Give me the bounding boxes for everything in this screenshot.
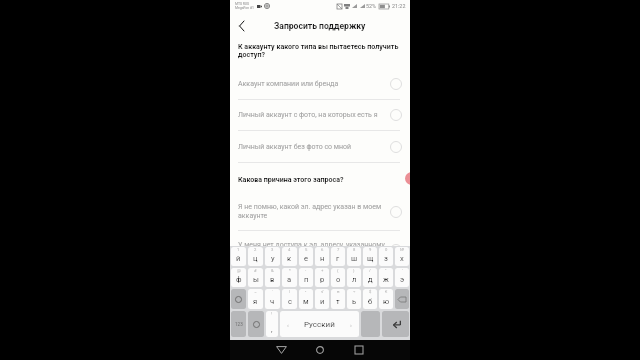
button[interactable]: ~ bbox=[248, 289, 263, 309]
staticText: @ bbox=[237, 268, 241, 273]
button[interactable]: # bbox=[248, 268, 263, 287]
staticText: п bbox=[304, 275, 309, 284]
button[interactable]: € bbox=[379, 289, 393, 309]
button[interactable]: Backspace bbox=[395, 289, 409, 309]
staticText: э bbox=[400, 275, 405, 284]
staticText: √ bbox=[321, 289, 324, 294]
staticText: е bbox=[304, 254, 309, 263]
button[interactable]: & bbox=[265, 268, 280, 287]
button[interactable]: 2 bbox=[248, 247, 263, 266]
button[interactable]: ' bbox=[395, 268, 409, 287]
staticText: х bbox=[400, 254, 404, 263]
staticText: ч bbox=[270, 297, 275, 306]
staticText: | bbox=[289, 289, 291, 294]
button[interactable]: Личный аккаунт без фото со мной bbox=[230, 131, 410, 163]
staticText: € bbox=[385, 289, 388, 294]
button[interactable]: ` bbox=[265, 289, 280, 309]
staticText: Я не помню, какой эл. адрес указан в мое… bbox=[238, 203, 386, 220]
staticText: , bbox=[271, 325, 273, 334]
staticText: 5 bbox=[305, 247, 308, 252]
staticText: 1 bbox=[237, 247, 240, 252]
staticText: ! bbox=[271, 311, 273, 316]
button[interactable]: Home bbox=[309, 340, 331, 360]
staticText: в bbox=[270, 275, 275, 284]
button[interactable]: 8 bbox=[347, 247, 361, 266]
staticText: о bbox=[336, 275, 341, 284]
staticText: $ bbox=[369, 289, 372, 294]
button[interactable]: Я не помню, какой эл. адрес указан в мое… bbox=[230, 193, 410, 231]
button[interactable]: Enter bbox=[382, 311, 409, 337]
button[interactable]: ) bbox=[347, 268, 361, 287]
staticText: г bbox=[336, 254, 340, 263]
staticText: з bbox=[384, 254, 388, 263]
button[interactable]: π bbox=[331, 289, 345, 309]
staticText: π bbox=[337, 289, 340, 294]
staticText: ‹ bbox=[287, 321, 289, 328]
staticText: * bbox=[289, 268, 291, 273]
staticText: ~ bbox=[254, 289, 257, 294]
staticText: м bbox=[303, 297, 309, 306]
staticText: Личный аккаунт без фото со мной bbox=[238, 143, 386, 151]
button[interactable]: Back bbox=[270, 340, 292, 360]
button[interactable]: Аккаунт компании или бренда bbox=[230, 69, 410, 100]
staticText: # bbox=[254, 268, 257, 273]
staticText: у bbox=[271, 254, 275, 263]
button[interactable]: Emoji bbox=[248, 311, 264, 337]
staticText: н bbox=[320, 254, 325, 263]
button[interactable]: 0 bbox=[379, 247, 393, 266]
button[interactable]: ( bbox=[331, 268, 345, 287]
button[interactable]: @ bbox=[231, 268, 246, 287]
staticText: › bbox=[350, 321, 352, 328]
button[interactable]: Личный аккаунт с фото, на которых есть я bbox=[230, 100, 410, 131]
staticText: ) bbox=[353, 268, 355, 273]
staticText: ' bbox=[402, 268, 403, 273]
button[interactable]: Back bbox=[233, 18, 249, 34]
staticText: т bbox=[336, 297, 340, 306]
button[interactable]: 1 bbox=[231, 247, 246, 266]
staticText: щ bbox=[367, 254, 374, 263]
button[interactable]: √ bbox=[315, 289, 329, 309]
staticText: р bbox=[320, 275, 325, 284]
staticText: 3 bbox=[271, 247, 274, 252]
button[interactable]: 7 bbox=[331, 247, 345, 266]
button[interactable]: - bbox=[299, 268, 313, 287]
button[interactable]: 9 bbox=[363, 247, 377, 266]
staticText: к bbox=[287, 254, 292, 263]
button[interactable]: У меня нет доступа к эл. адресу, указанн… bbox=[230, 231, 410, 269]
staticText: ж bbox=[383, 275, 389, 284]
staticText: 52% bbox=[366, 3, 377, 9]
button[interactable]: Shift bbox=[231, 289, 246, 309]
button[interactable]: 6 bbox=[315, 247, 329, 266]
staticText: У меня нет доступа к эл. адресу, указанн… bbox=[238, 241, 386, 258]
staticText: 2 bbox=[254, 247, 257, 252]
button[interactable]: ÷ bbox=[347, 289, 361, 309]
button[interactable]: Numbers bbox=[231, 311, 246, 337]
staticText: 9 bbox=[369, 247, 372, 252]
button[interactable]: " bbox=[379, 268, 393, 287]
button[interactable]: ! bbox=[266, 311, 278, 337]
button[interactable]: ‹ bbox=[280, 311, 359, 337]
button[interactable]: 3 bbox=[265, 247, 280, 266]
button[interactable]: Recents bbox=[348, 340, 370, 360]
staticText: Какова причина этого запроса? bbox=[238, 175, 344, 183]
staticText: д bbox=[368, 275, 373, 284]
staticText: / bbox=[369, 268, 371, 273]
staticText: а bbox=[287, 275, 292, 284]
staticText: ы bbox=[253, 275, 259, 284]
button[interactable]: * bbox=[282, 268, 297, 287]
button[interactable]: + bbox=[315, 268, 329, 287]
staticText: 0 bbox=[385, 247, 388, 252]
staticText: MTS RUS bbox=[235, 2, 250, 6]
staticText: № bbox=[400, 247, 405, 252]
button[interactable]: • bbox=[299, 289, 313, 309]
button[interactable]: № bbox=[395, 247, 409, 266]
button[interactable]: $ bbox=[363, 289, 377, 309]
button[interactable]: 5 bbox=[299, 247, 313, 266]
button[interactable]: / bbox=[363, 268, 377, 287]
button[interactable]: 4 bbox=[282, 247, 297, 266]
button[interactable]: | bbox=[282, 289, 297, 309]
staticText: ` bbox=[272, 289, 274, 294]
staticText: ю bbox=[383, 297, 390, 306]
staticText: Запросить поддержку bbox=[274, 21, 366, 31]
